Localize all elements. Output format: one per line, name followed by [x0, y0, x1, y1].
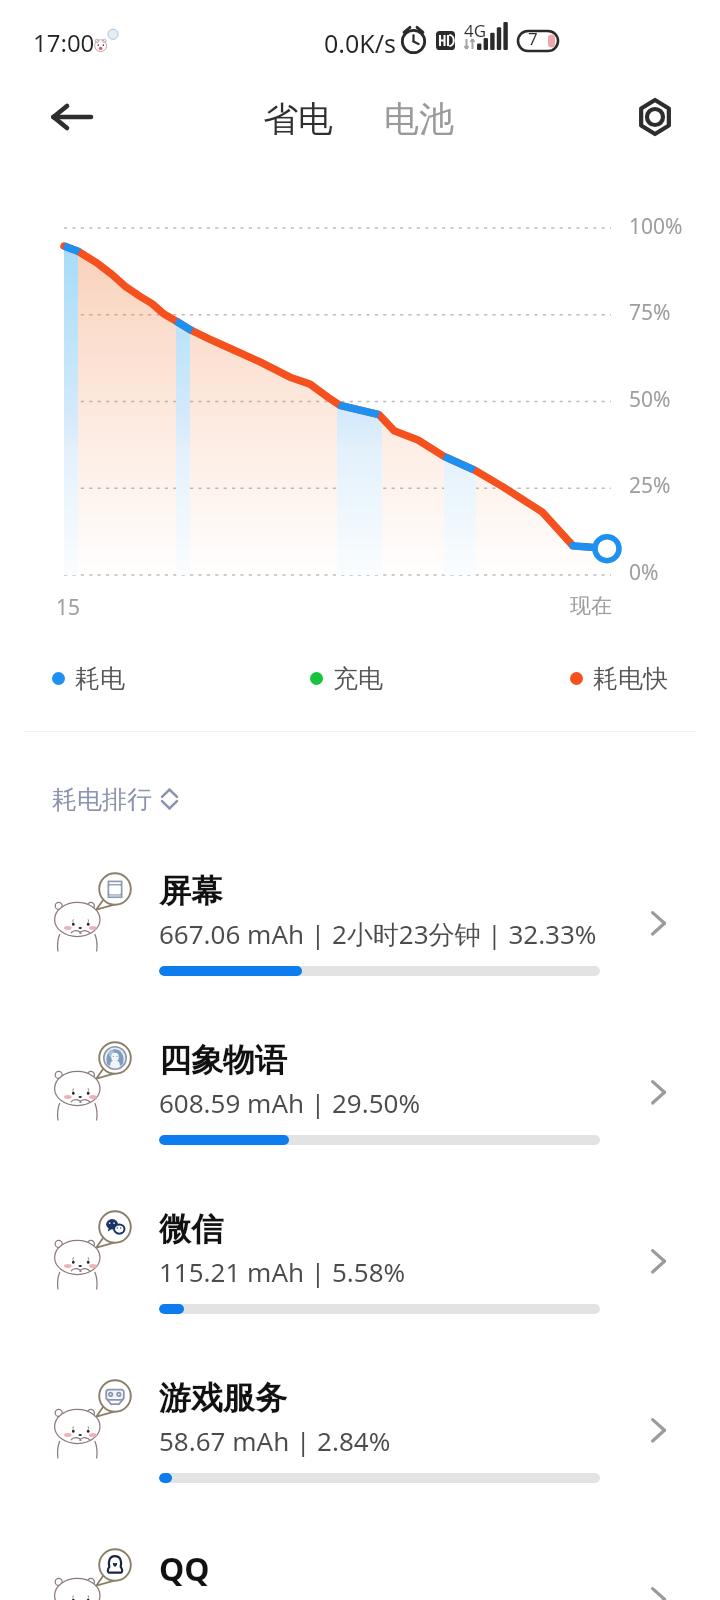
staticText: 100% — [629, 212, 683, 241]
button[interactable]: 屏幕 — [0, 845, 720, 1005]
button[interactable]: Settings — [627, 89, 683, 145]
button[interactable]: 耗电 — [52, 660, 125, 696]
button[interactable]: 四象物语 — [0, 1014, 720, 1174]
button[interactable]: 电池 — [376, 93, 462, 145]
staticText: 充电 — [333, 663, 383, 694]
staticText: 17:00 — [33, 26, 95, 59]
staticText: 4G — [464, 19, 487, 42]
staticText: 电池 — [384, 97, 454, 141]
staticText: 608.59 mAh | 29.50% — [159, 1085, 420, 1120]
staticText: 耗电 — [75, 663, 125, 694]
button[interactable]: QQ — [0, 1521, 720, 1600]
staticText: 50% — [629, 385, 671, 414]
staticText: 115.21 mAh | 5.58% — [159, 1254, 406, 1289]
staticText: 0.0K/s — [324, 26, 397, 60]
staticText: 游戏服务 — [159, 1378, 287, 1418]
staticText: 25% — [629, 471, 671, 500]
button[interactable]: 充电 — [310, 660, 383, 696]
staticText: 四象物语 — [159, 1040, 287, 1080]
button[interactable]: Back — [43, 89, 99, 145]
staticText: 屏幕 — [159, 871, 223, 911]
staticText: 0% — [629, 558, 659, 587]
staticText: 58.67 mAh | 2.84% — [159, 1423, 391, 1458]
button[interactable]: 耗电排行 — [46, 775, 184, 823]
button[interactable]: 游戏服务 — [0, 1352, 720, 1512]
staticText: 耗电排行 — [52, 784, 152, 815]
staticText: 15 — [56, 593, 81, 622]
button[interactable]: 微信 — [0, 1183, 720, 1343]
staticText: 耗电快 — [593, 663, 668, 694]
staticText: 现在 — [570, 593, 612, 619]
staticText: 省电 — [263, 97, 333, 141]
staticText: 75% — [629, 298, 671, 327]
button[interactable]: 省电 — [255, 93, 341, 145]
staticText: 667.06 mAh | 2小时23分钟 | 32.33% — [159, 916, 597, 952]
staticText: QQ — [159, 1547, 210, 1591]
button[interactable]: 耗电快 — [570, 660, 668, 696]
staticText: 7 — [528, 27, 538, 50]
staticText: 微信 — [159, 1209, 223, 1249]
